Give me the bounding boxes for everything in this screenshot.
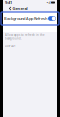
staticText: 9:41 xyxy=(5,0,12,5)
staticText: General xyxy=(13,6,28,11)
staticText: •ıl xyxy=(46,0,50,5)
button[interactable]: Background App Refresh xyxy=(1,12,59,25)
staticText: Allow apps to refresh in the background. xyxy=(5,33,45,40)
button[interactable]: General xyxy=(9,6,28,11)
staticText: Background App Refresh xyxy=(4,16,47,21)
staticText: DISPLAY xyxy=(5,44,16,48)
